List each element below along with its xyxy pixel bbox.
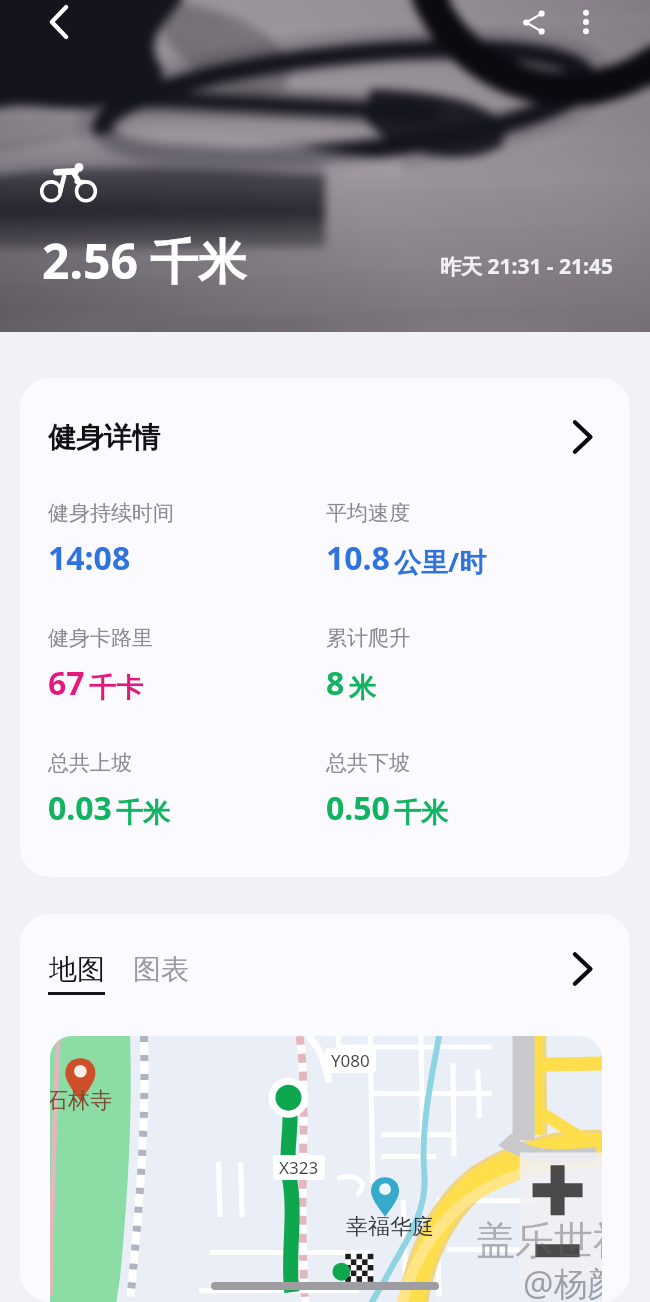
staticText: 总共下坡 (326, 750, 410, 776)
staticText: 石林寺 (50, 1087, 112, 1115)
staticText: 图表 (133, 952, 189, 987)
button[interactable]: Share (507, 0, 559, 48)
button[interactable]: Back (35, 0, 83, 46)
staticText: 67 (48, 661, 85, 705)
staticText: 平均速度 (326, 500, 410, 526)
staticText: 0.03 (48, 786, 112, 830)
staticText: 千米 (116, 796, 170, 830)
staticText: 2.56 千米 (42, 228, 247, 294)
button[interactable]: 图表 (133, 952, 189, 987)
staticText: Y080 (331, 1049, 370, 1072)
staticText: 千卡 (89, 671, 143, 705)
staticText: 盖乐世社区 (476, 1216, 602, 1265)
button[interactable]: 地图 (48, 952, 105, 995)
staticText: 千米 (394, 796, 448, 830)
button[interactable]: More options (560, 0, 612, 48)
staticText: 累计爬升 (326, 625, 410, 651)
staticText: 公里/时 (394, 543, 487, 580)
staticText: 健身持续时间 (48, 500, 174, 526)
staticText: 健身详情 (48, 420, 160, 455)
button[interactable]: 健身详情 (48, 378, 592, 496)
staticText: @杨颜yy (523, 1260, 602, 1302)
button[interactable]: Route map (50, 1036, 602, 1302)
staticText: 昨天 21:31 - 21:45 (440, 252, 613, 281)
staticText: 8 (326, 661, 345, 705)
staticText: 14:08 (48, 536, 131, 580)
staticText: X323 (279, 1156, 319, 1179)
staticText: 0.50 (326, 786, 390, 830)
button[interactable]: 健身详情 (20, 378, 630, 877)
staticText: 总共上坡 (48, 750, 132, 776)
staticText: 幸福华庭 (346, 1213, 434, 1241)
staticText: 健身卡路里 (48, 625, 153, 651)
staticText: 地图 (49, 952, 105, 987)
staticText: 10.8 (326, 536, 390, 580)
staticText: 米 (349, 671, 376, 705)
